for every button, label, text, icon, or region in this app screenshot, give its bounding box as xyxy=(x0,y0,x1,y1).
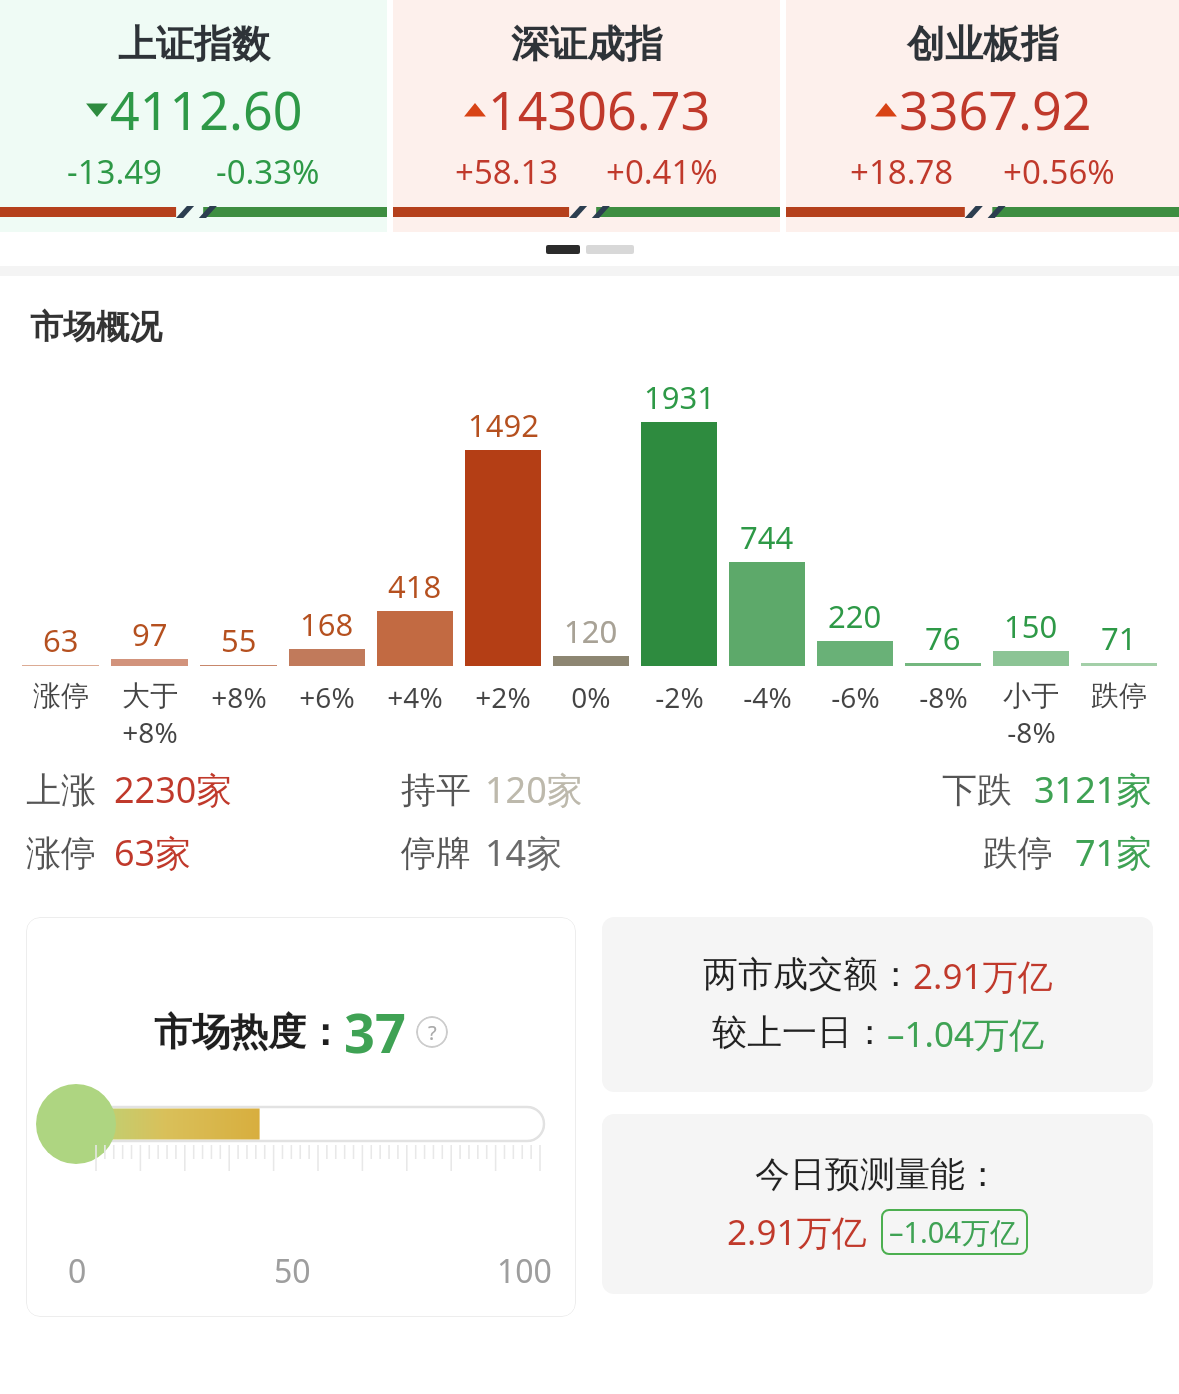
staticText: 较上一日： xyxy=(712,1010,887,1054)
staticText: 100 xyxy=(497,1249,552,1293)
staticText: 跌停 xyxy=(983,831,1053,875)
staticText: 2.91万亿 xyxy=(727,1208,867,1256)
staticText: -8% xyxy=(919,678,968,716)
staticText: 3367.92 xyxy=(899,74,1092,145)
staticText: 63 xyxy=(43,619,79,661)
staticText: +8% xyxy=(211,678,267,716)
staticText: -0.33% xyxy=(216,149,320,194)
staticText: 71家 xyxy=(1075,828,1153,877)
staticText: 深证成指 xyxy=(511,20,663,68)
staticText: 跌停 xyxy=(1091,678,1147,713)
staticText: +8% xyxy=(122,713,178,751)
staticText: 14家 xyxy=(485,828,563,877)
staticText: 150 xyxy=(1004,605,1058,647)
staticText: 上涨 xyxy=(26,768,96,812)
staticText: –1.04万亿 xyxy=(887,1010,1044,1058)
staticText: –1.04万亿 xyxy=(889,1212,1020,1252)
staticText: +6% xyxy=(299,678,355,716)
staticText: 3121家 xyxy=(1034,765,1153,814)
staticText: +58.13 xyxy=(455,149,559,194)
staticText: 创业板指 xyxy=(907,20,1059,68)
staticText: 市场概况 xyxy=(30,306,162,348)
staticText: 71 xyxy=(1101,617,1137,659)
staticText: 744 xyxy=(740,516,794,558)
staticText: 14306.73 xyxy=(488,74,711,145)
staticText: 97 xyxy=(132,613,168,655)
staticText: 2230家 xyxy=(114,765,233,814)
staticText: -4% xyxy=(743,678,792,716)
staticText: +2% xyxy=(475,678,531,716)
staticText: 418 xyxy=(388,565,442,607)
staticText: 上证指数 xyxy=(118,20,270,68)
staticText: 1931 xyxy=(644,376,715,418)
staticText: 小于 xyxy=(1003,678,1059,713)
staticText: 76 xyxy=(925,617,961,659)
staticText: +18.78 xyxy=(850,149,954,194)
button[interactable]: 帮助 xyxy=(416,1016,448,1048)
staticText: ? xyxy=(428,1019,437,1046)
staticText: 63家 xyxy=(114,828,192,877)
staticText: -8% xyxy=(1007,713,1056,751)
button[interactable]: 今日预测量能： xyxy=(602,1114,1153,1294)
staticText: 今日预测量能： xyxy=(755,1152,1000,1196)
staticText: 涨停 xyxy=(26,831,96,875)
staticText: 1492 xyxy=(468,404,539,446)
staticText: +4% xyxy=(387,678,443,716)
staticText: -2% xyxy=(655,678,704,716)
staticText: -6% xyxy=(831,678,880,716)
staticText: 停牌 xyxy=(401,831,471,875)
staticText: 下跌 xyxy=(942,768,1012,812)
staticText: +0.41% xyxy=(606,149,718,194)
staticText: -13.49 xyxy=(67,149,162,194)
staticText: 50 xyxy=(274,1249,311,1293)
staticText: 120家 xyxy=(485,765,583,814)
staticText: 37 xyxy=(344,995,406,1069)
button[interactable]: 市场热度： xyxy=(26,917,576,1317)
button[interactable]: 创业板指 xyxy=(786,0,1179,232)
button[interactable]: 上证指数 xyxy=(0,0,387,232)
staticText: 168 xyxy=(300,603,354,645)
staticText: 55 xyxy=(221,619,257,661)
staticText: 持平 xyxy=(401,768,471,812)
button[interactable]: 两市成交额： xyxy=(602,917,1153,1092)
staticText: +0.56% xyxy=(1003,149,1115,194)
button[interactable]: 深证成指 xyxy=(393,0,780,232)
staticText: 0% xyxy=(571,678,611,716)
staticText: 0 xyxy=(68,1249,87,1293)
staticText: 120 xyxy=(564,610,618,652)
staticText: 涨停 xyxy=(33,678,89,713)
staticText: 2.91万亿 xyxy=(913,952,1053,1000)
staticText: 大于 xyxy=(122,678,178,713)
staticText: 市场热度： xyxy=(154,1008,344,1056)
staticText: 两市成交额： xyxy=(703,952,913,996)
staticText: 220 xyxy=(828,595,882,637)
staticText: 4112.60 xyxy=(110,74,303,145)
